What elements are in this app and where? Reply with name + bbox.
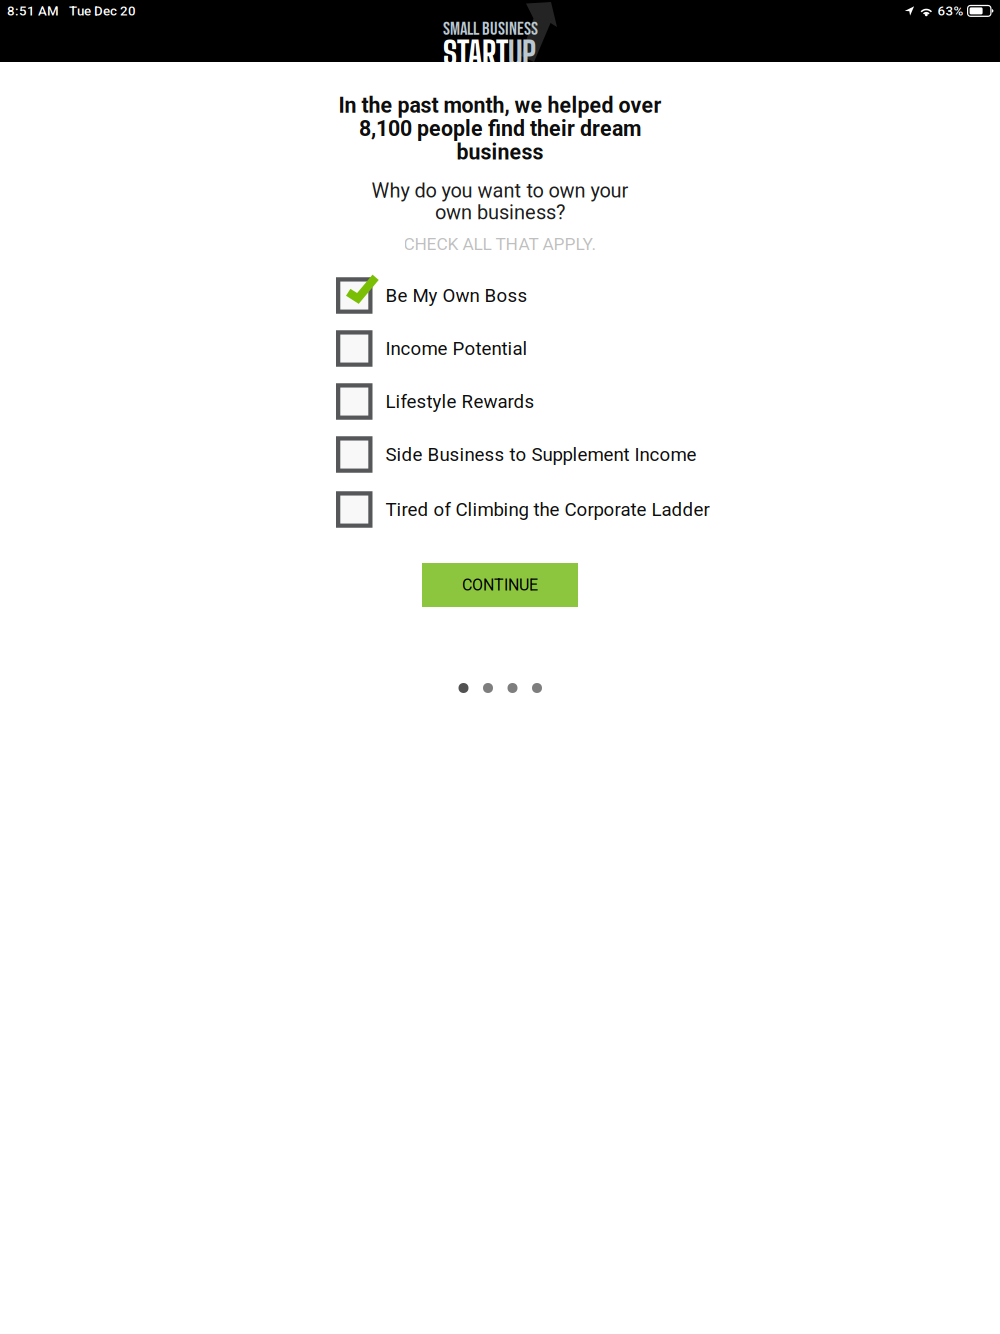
staticText: Side Business to Supplement Income — [385, 444, 696, 465]
staticText: START — [443, 34, 508, 72]
staticText: SMALL BUSINESS — [443, 18, 538, 40]
staticText: Why do you want to own your — [371, 179, 628, 202]
button[interactable]: Tired of Climbing the Corporate Ladder — [336, 491, 756, 528]
staticText: Tue Dec 20 — [69, 3, 136, 19]
staticText: own business? — [435, 201, 565, 224]
staticText: Lifestyle Rewards — [385, 391, 534, 412]
staticText: 8,100 people find their dream — [359, 116, 641, 141]
button[interactable]: Income Potential — [336, 330, 756, 367]
staticText: CHECK ALL THAT APPLY. — [403, 234, 596, 254]
staticText: 63% — [938, 3, 964, 19]
staticText: Income Potential — [385, 338, 527, 359]
staticText: 8:51 AM — [7, 3, 59, 19]
staticText: UP — [508, 34, 536, 72]
button[interactable]: Be My Own Boss — [336, 277, 756, 314]
staticText: CONTINUE — [462, 576, 538, 594]
button[interactable]: CONTINUE — [422, 563, 578, 607]
staticText: In the past month, we helped over — [338, 93, 661, 118]
staticText: business — [456, 140, 543, 165]
staticText: Tired of Climbing the Corporate Ladder — [385, 499, 709, 520]
staticText: Be My Own Boss — [385, 285, 527, 306]
button[interactable]: Side Business to Supplement Income — [336, 436, 756, 473]
button[interactable]: Lifestyle Rewards — [336, 383, 756, 420]
